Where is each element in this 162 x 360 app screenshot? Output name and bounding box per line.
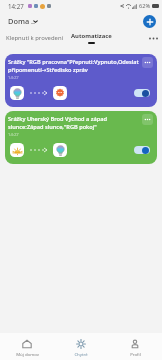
staticText: Automatizace <box>71 32 112 40</box>
button[interactable]: Srážky Uherský Brod Východ a západ <box>5 111 157 164</box>
button[interactable]: Chytré <box>54 333 108 360</box>
button[interactable]: Klepnutí k provedení <box>0 30 70 46</box>
staticText: Doma .. <box>8 16 36 26</box>
button[interactable]: Add <box>143 15 156 28</box>
staticText: Klepnutí k provedení <box>6 34 64 42</box>
staticText: Chytré <box>74 351 88 357</box>
staticText: připomenutí→Středisko zpráv <box>8 66 88 74</box>
staticText: slunce:Západ slunce,"RGB pokoj" <box>8 123 97 131</box>
staticText: Profil <box>130 351 141 357</box>
button[interactable]: Automatizace <box>71 30 112 46</box>
staticText: Srážky Uherský Brod Východ a západ <box>8 115 107 123</box>
staticText: 14:27 <box>8 75 19 81</box>
button[interactable]: Srážky "RGB pracovna"Přepnuti:Vypnuto,Od… <box>5 54 157 107</box>
button[interactable]: Můj domov <box>0 333 54 360</box>
staticText: Můj domov <box>16 351 39 357</box>
staticText: Srážky "RGB pracovna"Přepnuti:Vypnuto,Od… <box>8 58 139 66</box>
button[interactable]: Enable automation <box>134 89 150 97</box>
button[interactable]: Card options <box>142 114 153 125</box>
staticText: 14:27 <box>8 132 19 138</box>
button[interactable]: Enable automation <box>134 146 150 154</box>
staticText: 14:27 <box>8 2 24 10</box>
button[interactable]: Doma .. <box>8 14 41 28</box>
staticText: 62% <box>139 2 151 10</box>
button[interactable]: Profil <box>108 333 162 360</box>
button[interactable]: Card options <box>142 57 153 68</box>
button[interactable]: More options <box>144 30 162 46</box>
